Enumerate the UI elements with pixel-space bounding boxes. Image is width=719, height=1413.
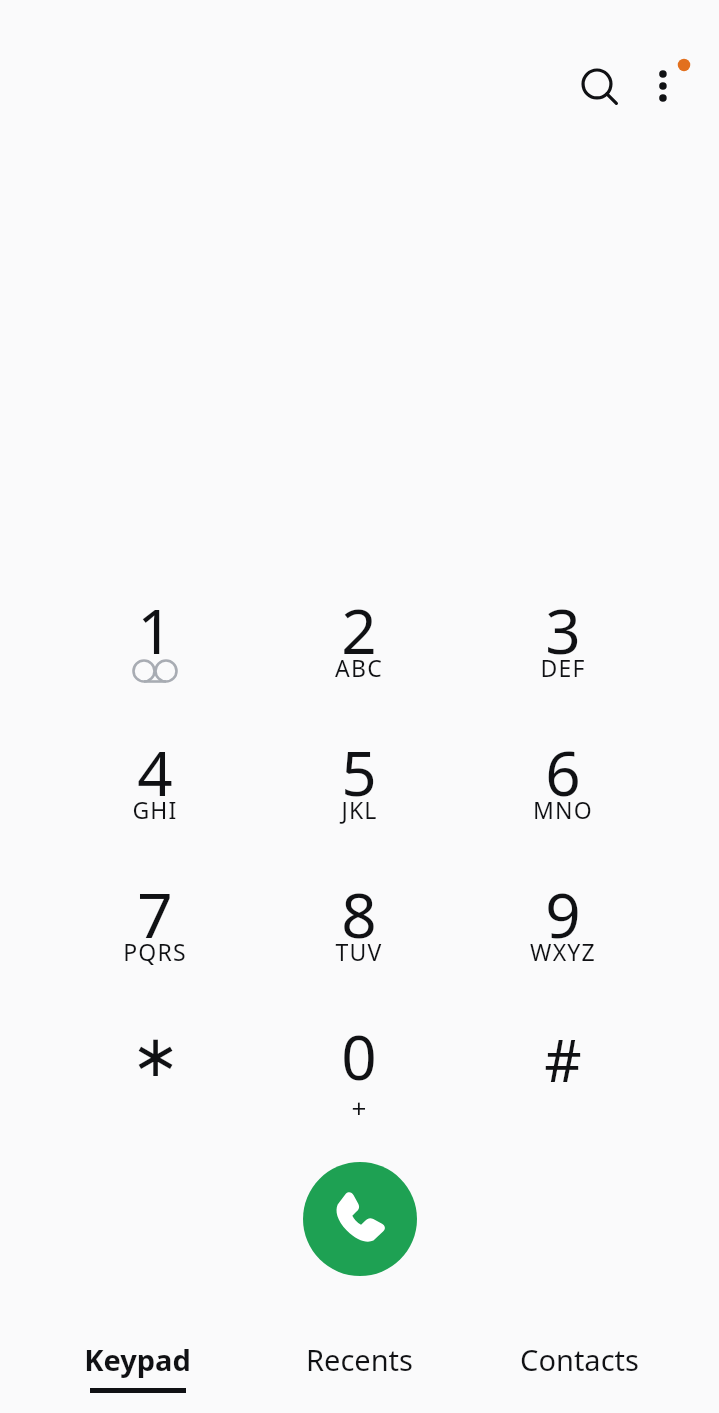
button[interactable]: 2 xyxy=(257,578,461,720)
button[interactable]: ∗ xyxy=(53,1004,257,1146)
button[interactable]: # xyxy=(461,1004,665,1146)
staticText: WXYZ xyxy=(530,936,596,967)
button[interactable]: Search xyxy=(563,52,631,120)
staticText: 2 xyxy=(341,588,377,672)
button[interactable]: 7 xyxy=(53,862,257,1004)
staticText: JKL xyxy=(341,794,378,825)
staticText: 1 xyxy=(137,588,173,672)
staticText: 5 xyxy=(341,730,377,814)
staticText: Contacts xyxy=(520,1340,639,1379)
staticText: ∗ xyxy=(131,1022,180,1090)
staticText: 3 xyxy=(545,588,581,672)
staticText: MNO xyxy=(533,794,593,825)
staticText: PQRS xyxy=(123,936,187,967)
staticText: 0 xyxy=(341,1014,377,1098)
staticText: 6 xyxy=(545,730,581,814)
button[interactable]: Call xyxy=(303,1162,417,1276)
staticText: 9 xyxy=(545,872,581,956)
staticText: 7 xyxy=(137,872,173,956)
staticText: ABC xyxy=(335,652,383,683)
staticText: 8 xyxy=(341,872,377,956)
button[interactable]: 4 xyxy=(53,720,257,862)
button[interactable]: Recents xyxy=(249,1322,469,1413)
button[interactable]: 8 xyxy=(257,862,461,1004)
button[interactable]: 6 xyxy=(461,720,665,862)
button[interactable]: More options xyxy=(632,52,700,120)
button[interactable]: Contacts xyxy=(469,1322,689,1413)
button[interactable]: Keypad xyxy=(27,1322,247,1413)
button[interactable]: 3 xyxy=(461,578,665,720)
staticText: + xyxy=(351,1090,368,1125)
staticText: GHI xyxy=(132,794,178,825)
button[interactable]: 1 xyxy=(53,578,257,720)
staticText: # xyxy=(544,1020,582,1099)
staticText: DEF xyxy=(540,652,586,683)
button[interactable]: 9 xyxy=(461,862,665,1004)
button[interactable]: 0 xyxy=(257,1004,461,1146)
staticText: Keypad xyxy=(84,1340,191,1379)
staticText: TUV xyxy=(335,936,383,967)
button[interactable]: 5 xyxy=(257,720,461,862)
staticText: 4 xyxy=(137,730,173,814)
staticText: Recents xyxy=(306,1340,413,1379)
